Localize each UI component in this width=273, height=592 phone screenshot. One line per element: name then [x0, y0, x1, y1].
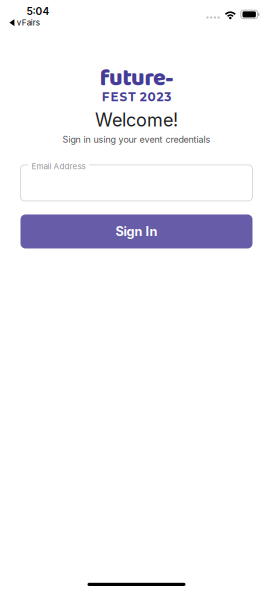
staticText: FEST 2023: [102, 90, 171, 104]
staticText: Sign in using your event credentials: [62, 134, 210, 145]
button[interactable]: Email Address: [20, 161, 252, 201]
staticText: Welcome!: [95, 112, 178, 128]
staticText: Sign In: [115, 224, 157, 239]
staticText: vFairs: [17, 18, 40, 27]
button[interactable]: Sign In: [20, 214, 252, 248]
staticText: 5:04: [26, 5, 49, 17]
staticText: future-: [100, 69, 173, 88]
staticText: Email Address: [31, 161, 85, 171]
